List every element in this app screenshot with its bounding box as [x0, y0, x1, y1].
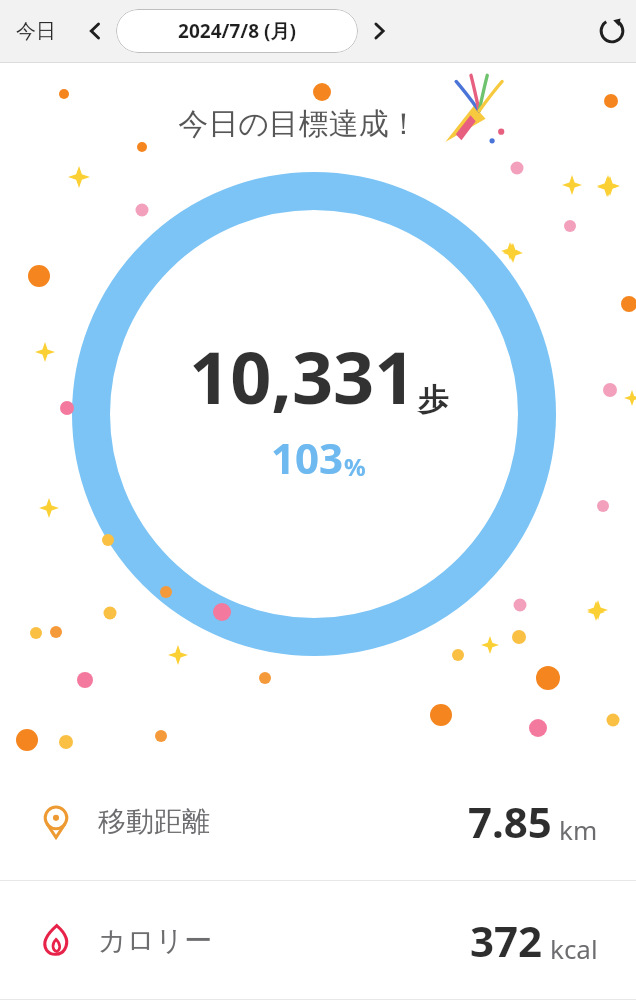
staticText: 2024/7/8 (月)	[178, 18, 296, 44]
staticText: 今日	[16, 19, 56, 44]
staticText: 103	[271, 429, 344, 486]
staticText: カロリー	[98, 923, 212, 958]
staticText: %	[344, 450, 366, 483]
staticText: 372	[470, 912, 543, 969]
staticText: 7.85	[468, 793, 552, 850]
staticText: 10,331	[189, 327, 416, 425]
button[interactable]: 今日	[0, 11, 72, 52]
staticText: kcal	[550, 931, 598, 966]
staticText: km	[559, 812, 598, 847]
button[interactable]: 2024/7/8 (月)	[116, 9, 358, 53]
staticText: 移動距離	[98, 804, 210, 839]
staticText: 歩	[418, 381, 448, 419]
button[interactable]: 移動距離	[0, 763, 636, 880]
button[interactable]: 翌日	[362, 14, 396, 48]
button[interactable]: カロリー	[0, 881, 636, 999]
staticText: 今日の目標達成！	[178, 105, 419, 143]
button[interactable]: 更新	[588, 7, 636, 55]
button[interactable]: 前日	[78, 14, 112, 48]
